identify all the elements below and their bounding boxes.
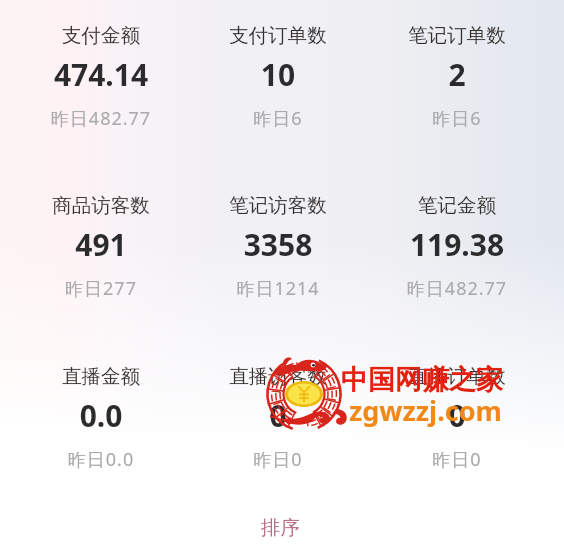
staticText: 昨日0	[368, 447, 546, 472]
button[interactable]: 直播订单数	[368, 341, 546, 511]
staticText: 10	[189, 54, 367, 95]
staticText: 支付订单数	[189, 23, 367, 48]
staticText: 昨日1214	[189, 276, 367, 301]
staticText: 排序	[261, 515, 300, 540]
staticText: 491	[12, 224, 190, 265]
button[interactable]: 直播金额	[12, 341, 190, 511]
staticText: zgwzzj.com	[349, 392, 502, 429]
button[interactable]: 商品访客数	[12, 170, 190, 340]
staticText: 直播金额	[12, 364, 190, 389]
staticText: 支付金额	[12, 23, 190, 48]
staticText: 昨日6	[368, 106, 546, 131]
staticText: 474.14	[12, 54, 190, 95]
button[interactable]: 支付金额	[12, 0, 190, 170]
staticText: 昨日277	[12, 276, 190, 301]
staticText: 2	[368, 54, 546, 95]
staticText: 119.38	[368, 224, 546, 265]
button[interactable]: 笔记访客数	[189, 170, 367, 340]
button[interactable]: 支付订单数	[189, 0, 367, 170]
staticText: 直播访客数	[189, 364, 367, 389]
staticText: 昨日0.0	[12, 447, 190, 472]
staticText: 0.0	[12, 395, 190, 436]
staticText: 0	[368, 395, 546, 436]
staticText: 昨日0	[189, 447, 367, 472]
staticText: 昨日482.77	[12, 106, 190, 131]
button[interactable]: 排序	[232, 505, 328, 549]
staticText: 0	[189, 395, 367, 436]
staticText: 昨日482.77	[368, 276, 546, 301]
staticText: 笔记访客数	[189, 193, 367, 218]
staticText: 商品访客数	[12, 193, 190, 218]
button[interactable]: 笔记金额	[368, 170, 546, 340]
staticText: 直播订单数	[368, 364, 546, 389]
button[interactable]: 笔记订单数	[368, 0, 546, 170]
staticText: 中国网赚之家	[341, 363, 503, 397]
staticText: 笔记金额	[368, 193, 546, 218]
staticText: 昨日6	[189, 106, 367, 131]
staticText: 笔记订单数	[368, 23, 546, 48]
button[interactable]: 直播访客数	[189, 341, 367, 511]
staticText: 3358	[189, 224, 367, 265]
